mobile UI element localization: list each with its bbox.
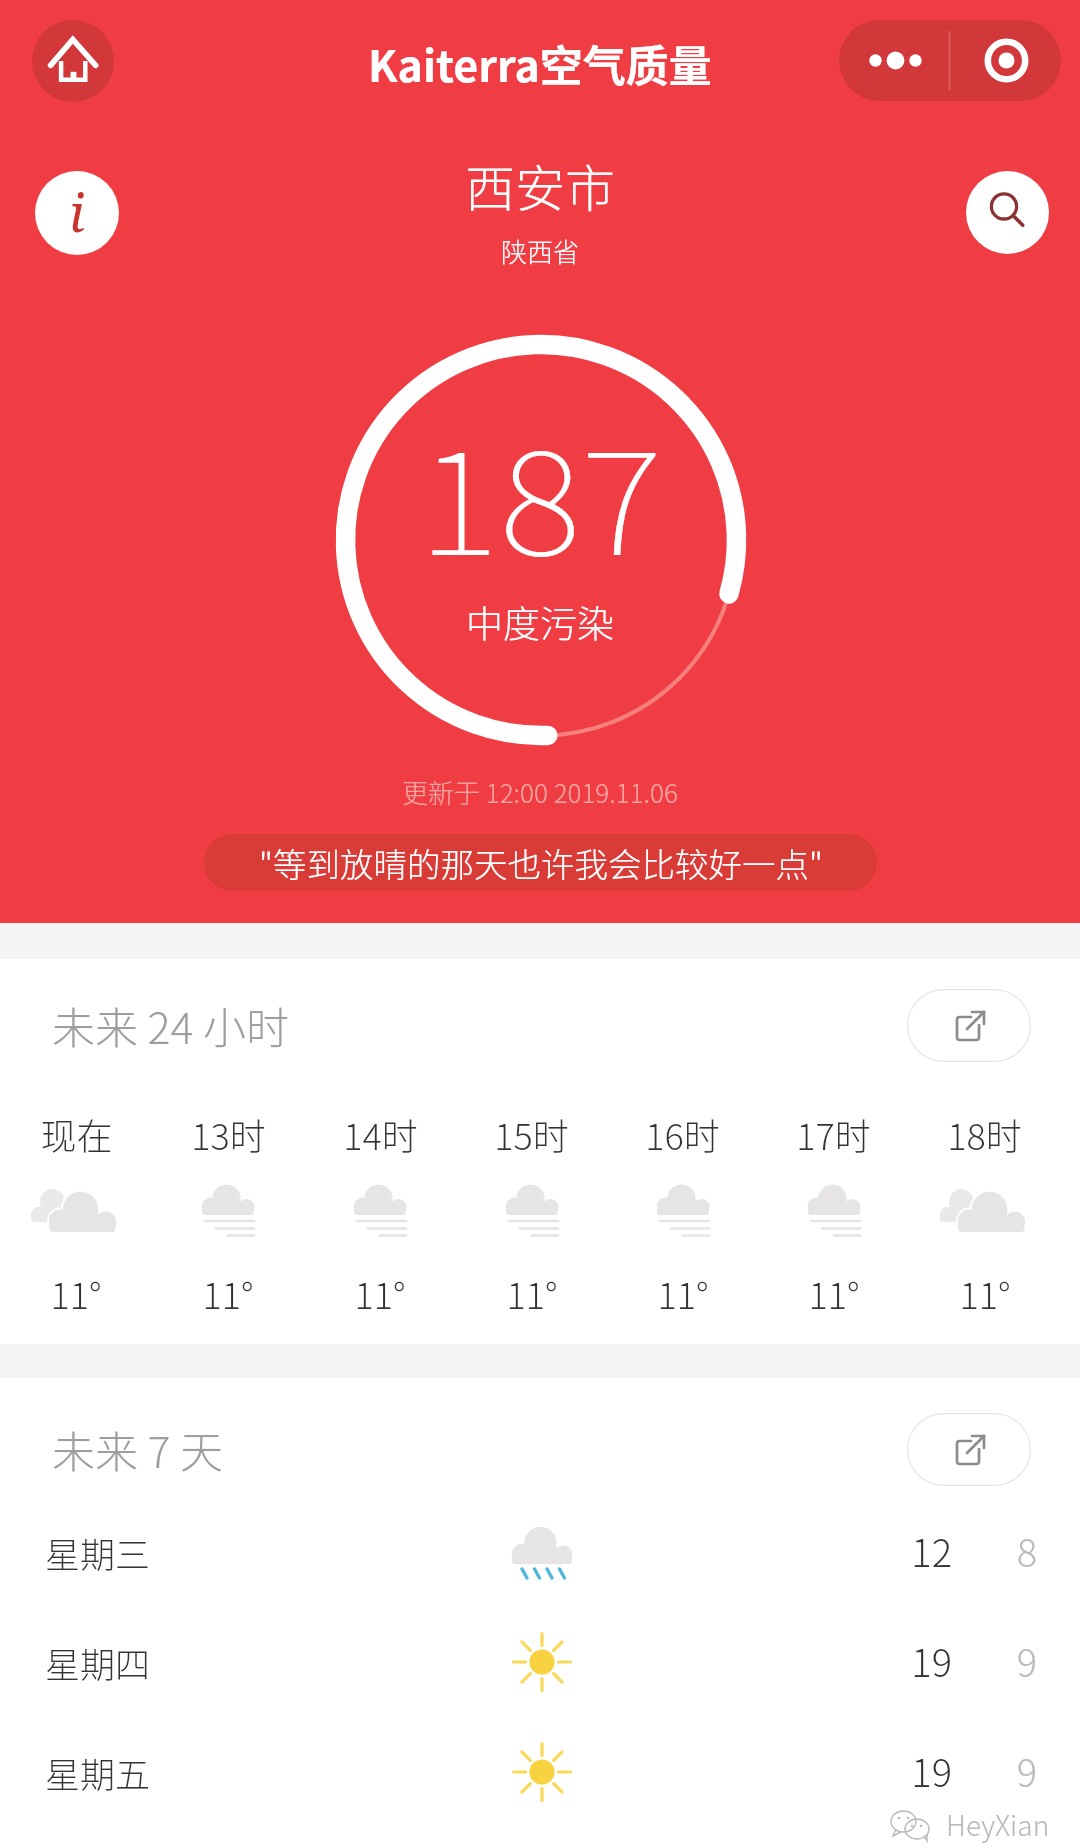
- button[interactable]: 现在: [0, 1106, 152, 1320]
- button[interactable]: Information: [35, 171, 119, 255]
- staticText: Kaiterra空气质量: [368, 32, 712, 94]
- staticText: 16时: [645, 1108, 720, 1160]
- staticText: HeyXian: [946, 1804, 1050, 1845]
- staticText: 星期三: [45, 1527, 151, 1578]
- staticText: 未来 7 天: [52, 1418, 224, 1480]
- staticText: 现在: [40, 1108, 113, 1160]
- button[interactable]: 17时: [758, 1106, 909, 1320]
- button[interactable]: 星期三: [0, 1497, 1080, 1607]
- button[interactable]: 14时: [304, 1106, 456, 1320]
- staticText: 未来 24 小时: [52, 994, 290, 1056]
- staticText: 18时: [947, 1108, 1022, 1160]
- staticText: 19: [872, 1633, 952, 1688]
- staticText: "等到放晴的那天也许我会比较好一点": [259, 838, 823, 887]
- staticText: 11°: [657, 1267, 709, 1319]
- staticText: 星期五: [45, 1747, 151, 1798]
- staticText: 9: [977, 1633, 1037, 1688]
- staticText: 187: [418, 391, 663, 595]
- button[interactable]: 星期五: [0, 1717, 1080, 1827]
- button[interactable]: Home: [32, 20, 114, 102]
- button[interactable]: Open details: [907, 1413, 1031, 1486]
- staticText: i: [69, 176, 85, 247]
- button[interactable]: "等到放晴的那天也许我会比较好一点": [204, 834, 877, 891]
- staticText: 11°: [959, 1267, 1011, 1319]
- staticText: 9: [977, 1743, 1037, 1798]
- staticText: 14时: [343, 1108, 418, 1160]
- staticText: 11°: [506, 1267, 558, 1319]
- staticText: 19: [872, 1743, 952, 1798]
- button[interactable]: 13时: [152, 1106, 304, 1320]
- staticText: 更新于 12:00 2019.11.06: [402, 773, 678, 811]
- staticText: 17时: [796, 1108, 871, 1160]
- button[interactable]: 16时: [607, 1106, 758, 1320]
- staticText: 15时: [494, 1108, 569, 1160]
- staticText: 11°: [808, 1267, 860, 1319]
- button[interactable]: Search: [966, 171, 1049, 254]
- staticText: 13时: [191, 1108, 266, 1160]
- staticText: 星期四: [45, 1637, 151, 1688]
- staticText: 11°: [50, 1267, 102, 1319]
- button[interactable]: 18时: [909, 1106, 1060, 1320]
- button[interactable]: Close mini program: [950, 20, 1061, 101]
- button[interactable]: More options: [839, 20, 950, 101]
- staticText: 11°: [202, 1267, 254, 1319]
- button[interactable]: Open details: [907, 989, 1031, 1062]
- staticText: 8: [977, 1523, 1037, 1578]
- staticText: 11°: [354, 1267, 406, 1319]
- button[interactable]: 星期四: [0, 1607, 1080, 1717]
- staticText: 陕西省: [501, 232, 580, 270]
- staticText: 中度污染: [466, 595, 614, 649]
- staticText: 西安市: [465, 149, 615, 221]
- staticText: 12: [872, 1523, 952, 1578]
- button[interactable]: 15时: [456, 1106, 607, 1320]
